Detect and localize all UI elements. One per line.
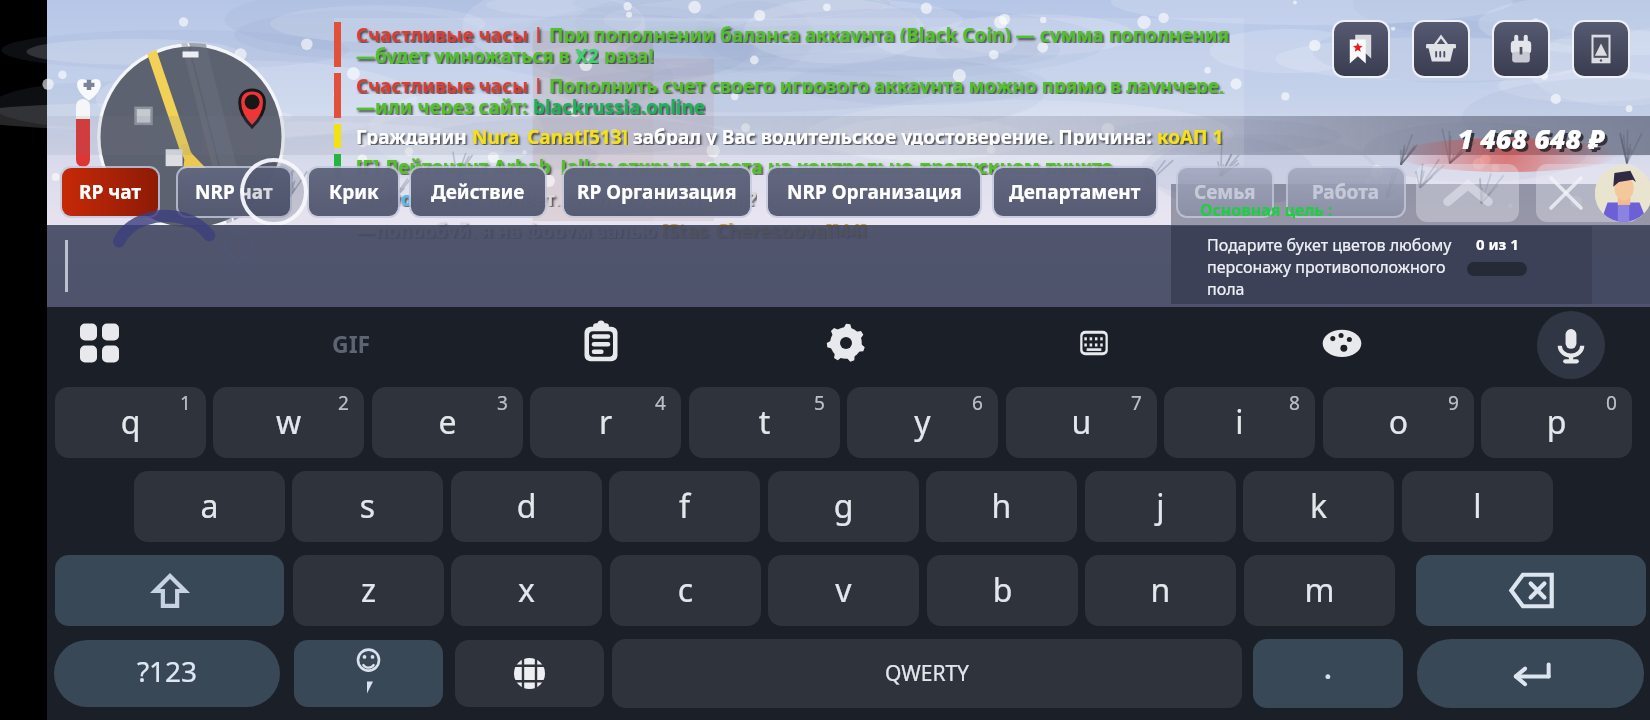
staticText: blackrussia.online bbox=[533, 94, 706, 115]
staticText: Семья bbox=[1194, 179, 1256, 205]
staticText: x bbox=[451, 568, 602, 626]
button[interactable]: d bbox=[451, 471, 602, 542]
button[interactable]: h bbox=[926, 471, 1077, 542]
button[interactable]: Settings bbox=[822, 319, 870, 367]
staticText: Крик bbox=[329, 179, 379, 205]
button[interactable]: s bbox=[292, 471, 443, 542]
button[interactable]: v bbox=[768, 555, 919, 626]
staticText: . bbox=[1253, 651, 1403, 708]
staticText: NRP Организация bbox=[787, 179, 962, 205]
staticText: w bbox=[213, 400, 364, 458]
button[interactable]: Действие bbox=[411, 168, 545, 216]
button[interactable]: Работа bbox=[1288, 168, 1404, 216]
button[interactable]: RP чат bbox=[62, 168, 158, 216]
staticText: раза! bbox=[599, 43, 654, 64]
button[interactable]: Voice input bbox=[1537, 311, 1605, 379]
staticText: QWERTY bbox=[612, 659, 1242, 708]
staticText: a bbox=[134, 484, 285, 542]
staticText: Sheyovik[23]: bbox=[356, 186, 486, 207]
staticText: 7 bbox=[1131, 390, 1142, 416]
button[interactable]: Clipboard bbox=[576, 319, 626, 367]
button[interactable]: c bbox=[610, 555, 761, 626]
staticText: r bbox=[530, 400, 681, 458]
button[interactable]: Shift bbox=[55, 555, 284, 626]
staticText: j bbox=[1085, 484, 1236, 542]
button[interactable]: Enter bbox=[1417, 639, 1644, 708]
staticText: 0 bbox=[1606, 390, 1617, 416]
button[interactable]: w bbox=[213, 387, 364, 458]
button[interactable]: NRP чат bbox=[178, 168, 290, 216]
staticText: c bbox=[610, 568, 761, 626]
button[interactable]: Profile bbox=[1595, 165, 1650, 222]
button[interactable]: y bbox=[847, 387, 998, 458]
button[interactable]: p bbox=[1481, 387, 1632, 458]
button[interactable]: q bbox=[55, 387, 206, 458]
button[interactable]: Theme bbox=[1319, 321, 1365, 365]
button[interactable]: Emoji bbox=[294, 640, 443, 707]
staticText: s bbox=[292, 484, 443, 542]
button[interactable]: Backspace bbox=[1416, 555, 1646, 626]
button[interactable]: i bbox=[1164, 387, 1315, 458]
button[interactable]: x bbox=[451, 555, 602, 626]
button[interactable]: Language bbox=[455, 640, 604, 707]
button[interactable]: Keyboard layout bbox=[1071, 321, 1117, 365]
button[interactable]: NRP Организация bbox=[768, 168, 980, 216]
staticText: —будет умножаться в bbox=[356, 43, 575, 64]
staticText: Nura_Canat[513] bbox=[472, 124, 628, 145]
button[interactable]: Backpack bbox=[1494, 22, 1548, 76]
button[interactable]: Close bbox=[1536, 164, 1640, 222]
button[interactable]: GIF bbox=[301, 319, 401, 367]
button[interactable]: o bbox=[1323, 387, 1474, 458]
button[interactable]: Крик bbox=[309, 168, 398, 216]
button[interactable]: Семья bbox=[1178, 168, 1272, 216]
staticText: Гражданин bbox=[356, 124, 472, 145]
button[interactable]: n bbox=[1085, 555, 1236, 626]
button[interactable]: t bbox=[689, 387, 840, 458]
button[interactable]: m bbox=[1244, 555, 1395, 626]
button[interactable]: j bbox=[1085, 471, 1236, 542]
staticText: e bbox=[372, 400, 523, 458]
staticText: b bbox=[927, 568, 1078, 626]
button[interactable]: f bbox=[609, 471, 760, 542]
staticText: Департамент bbox=[1009, 179, 1141, 205]
staticText: v bbox=[768, 568, 919, 626]
button[interactable]: u bbox=[1006, 387, 1157, 458]
button[interactable]: a bbox=[134, 471, 285, 542]
button[interactable]: . bbox=[1253, 639, 1403, 708]
staticText: n bbox=[1085, 568, 1236, 626]
button[interactable]: Favourites bbox=[1334, 22, 1388, 76]
staticText: 5 bbox=[814, 390, 825, 416]
staticText: Счастливые часы | bbox=[356, 22, 549, 43]
staticText: 6 bbox=[972, 390, 983, 416]
staticText: q bbox=[55, 400, 206, 458]
staticText: l bbox=[1402, 484, 1553, 542]
staticText: —попробуй, я на форум залью bbox=[356, 218, 662, 239]
button[interactable]: Apps bbox=[76, 321, 123, 365]
staticText: p bbox=[1481, 400, 1632, 458]
button[interactable]: Shop bbox=[1414, 22, 1468, 76]
staticText: ?123 bbox=[54, 652, 280, 707]
staticText: o bbox=[1323, 400, 1474, 458]
staticText: d bbox=[451, 484, 602, 542]
staticText: 8 bbox=[1289, 390, 1300, 416]
staticText: [Stas_Cherespova]]44] bbox=[662, 218, 867, 239]
button[interactable]: k bbox=[1243, 471, 1394, 542]
button[interactable]: Device bbox=[1574, 22, 1628, 76]
button[interactable]: ?123 bbox=[54, 640, 280, 707]
button[interactable]: b bbox=[927, 555, 1078, 626]
button[interactable]: Департамент bbox=[994, 168, 1156, 216]
button[interactable]: QWERTY bbox=[612, 639, 1242, 708]
staticText: RP Организация bbox=[577, 179, 737, 205]
button[interactable]: g bbox=[768, 471, 919, 542]
button[interactable]: Map bbox=[97, 43, 285, 231]
button[interactable]: e bbox=[372, 387, 523, 458]
staticText: t bbox=[689, 400, 840, 458]
button[interactable]: l bbox=[1402, 471, 1553, 542]
staticText: 2 bbox=[338, 390, 349, 416]
staticText: Работа bbox=[1312, 179, 1380, 205]
staticText: коАП 1 bbox=[1157, 124, 1224, 145]
button[interactable]: z bbox=[293, 555, 444, 626]
button[interactable]: RP Организация bbox=[564, 168, 750, 216]
button[interactable]: Scroll up bbox=[1416, 164, 1519, 222]
button[interactable]: r bbox=[530, 387, 681, 458]
